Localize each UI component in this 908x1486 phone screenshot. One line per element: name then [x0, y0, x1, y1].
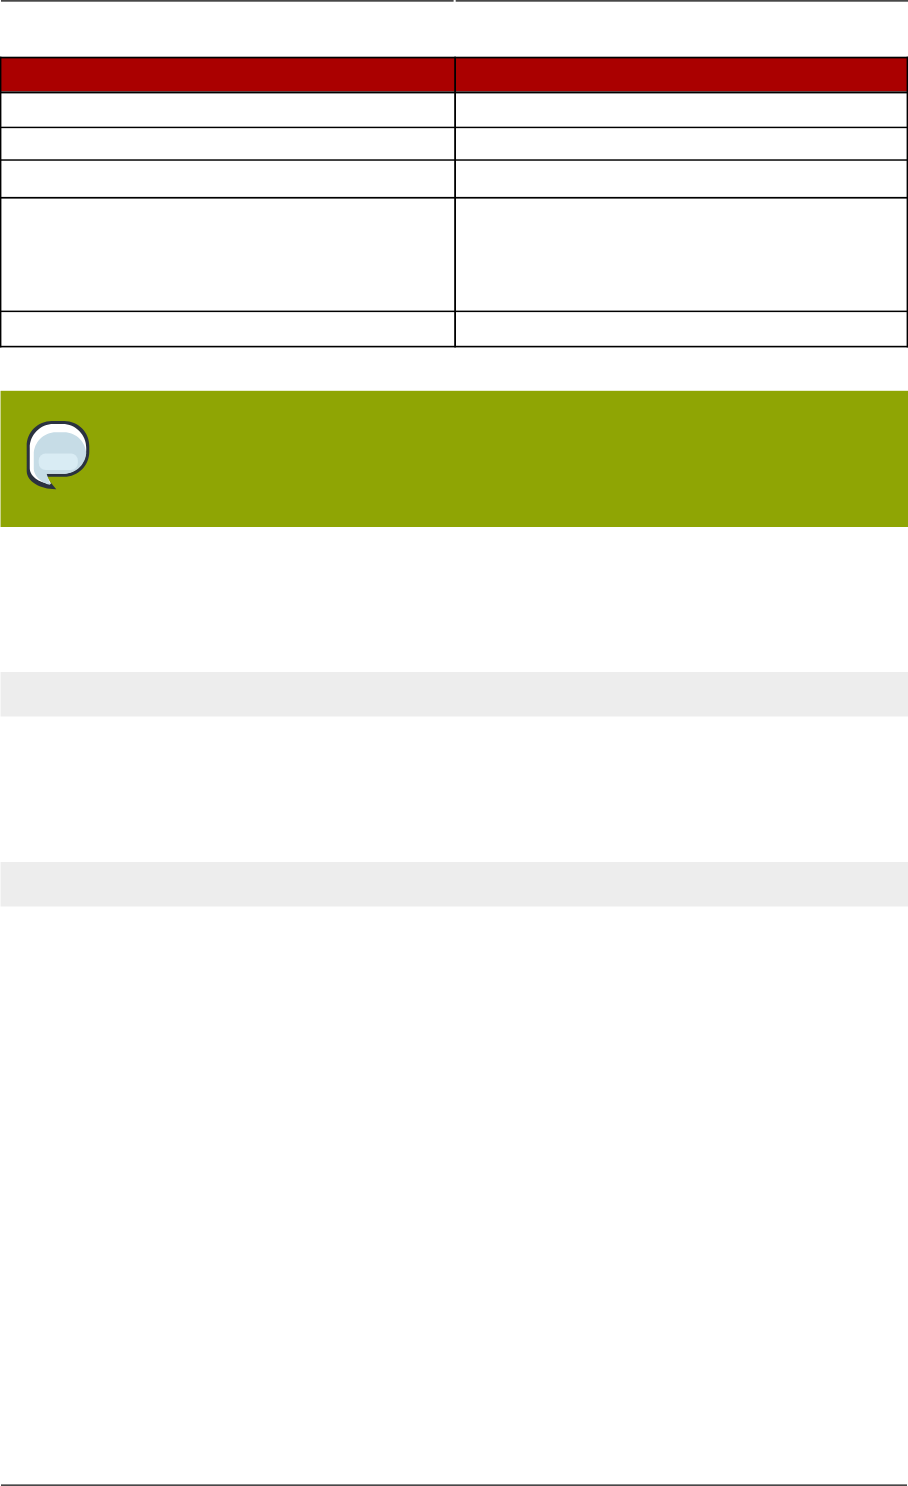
button[interactable]: Note callout [0, 391, 908, 527]
button[interactable]: Table header, first column [0, 57, 454, 92]
button[interactable]: Table row 1, second column [454, 91, 906, 126]
button[interactable]: Table row 2, second column [454, 127, 906, 160]
button[interactable]: Table row 4, second column [454, 197, 906, 311]
button[interactable]: Table row 3, first column [0, 159, 454, 197]
button[interactable]: Note [27, 421, 90, 491]
button[interactable]: Table row 4, first column [0, 197, 454, 311]
button[interactable]: Table row 1, first column [0, 91, 454, 126]
button[interactable]: Table row 5, first column [0, 311, 454, 346]
button[interactable]: Table header, second column [454, 57, 906, 92]
button[interactable]: Table row 5, second column [454, 311, 906, 346]
button[interactable]: Table row 2, first column [0, 127, 454, 160]
button[interactable]: Table row 3, second column [454, 159, 906, 197]
